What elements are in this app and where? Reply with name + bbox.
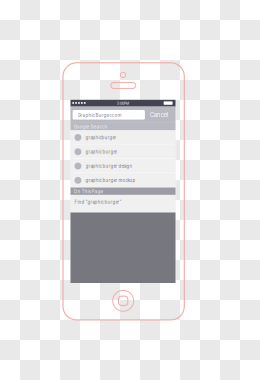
- button[interactable]: graphic burger: [70, 145, 175, 159]
- button[interactable]: graphic burger mockup: [70, 173, 175, 187]
- button[interactable]: graphic burger design: [70, 159, 175, 173]
- button[interactable]: graphicburger: [70, 130, 175, 145]
- button[interactable]: Find “graphic burger”: [70, 195, 175, 212]
- staticText: GraphicBurger.com: [78, 113, 122, 118]
- staticText: graphicburger: [86, 135, 117, 140]
- staticText: On This Page: [73, 189, 103, 194]
- staticText: graphic burger mockup: [86, 178, 136, 183]
- staticText: graphic burger design: [86, 164, 133, 169]
- staticText: Google Search: [73, 124, 107, 130]
- staticText: Cancel: [150, 111, 168, 118]
- staticText: 5:00PM: [117, 101, 129, 105]
- button[interactable]: Cancel: [150, 110, 170, 120]
- staticText: graphic burger: [86, 149, 118, 154]
- staticText: Find “graphic burger”: [74, 199, 121, 205]
